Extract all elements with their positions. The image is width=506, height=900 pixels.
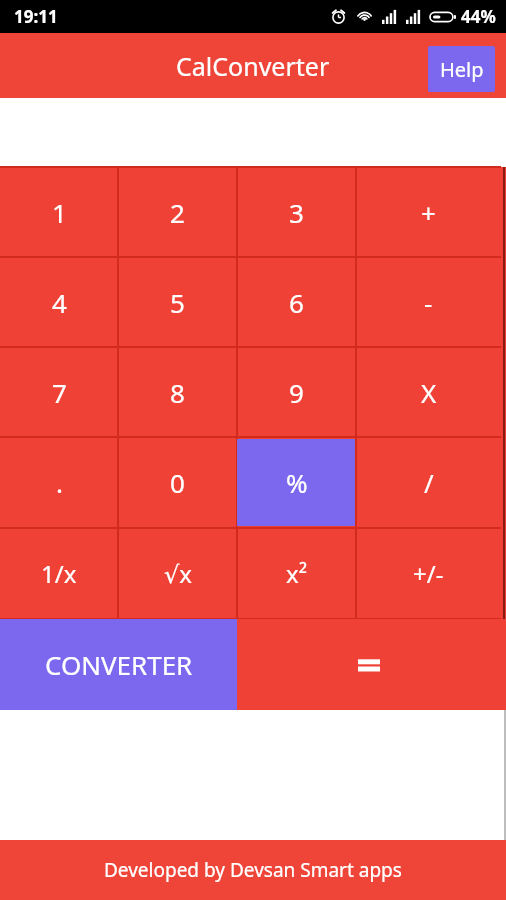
staticText: +/- bbox=[413, 557, 444, 590]
staticText: 5 bbox=[170, 285, 185, 320]
button[interactable]: + bbox=[356, 167, 501, 257]
other: Wifi bbox=[356, 8, 373, 25]
staticText: CONVERTER bbox=[45, 647, 193, 682]
button[interactable]: . bbox=[0, 437, 118, 528]
staticText: Help bbox=[440, 56, 484, 83]
staticText: 2 bbox=[170, 195, 185, 230]
button[interactable]: x² bbox=[237, 528, 356, 619]
staticText: √x bbox=[164, 557, 192, 590]
staticText: 7 bbox=[52, 375, 67, 410]
button[interactable]: 7 bbox=[0, 347, 118, 437]
staticText: 19:11 bbox=[14, 5, 58, 28]
button[interactable]: 6 bbox=[237, 257, 356, 347]
button[interactable]: +/- bbox=[356, 528, 501, 619]
other: Battery bbox=[430, 10, 456, 24]
staticText: Developed by Devsan Smart apps bbox=[104, 857, 402, 883]
button[interactable]: Developed by Devsan Smart apps bbox=[0, 840, 506, 900]
button[interactable]: √x bbox=[118, 528, 237, 619]
staticText: 44% bbox=[461, 5, 496, 28]
staticText: 1 bbox=[52, 195, 67, 230]
button[interactable]: 8 bbox=[118, 347, 237, 437]
button[interactable]: 5 bbox=[118, 257, 237, 347]
other: Signal bbox=[406, 9, 422, 24]
button[interactable]: 4 bbox=[0, 257, 118, 347]
staticText: 9 bbox=[289, 375, 304, 410]
staticText: CalConverter bbox=[176, 49, 330, 83]
button[interactable]: / bbox=[356, 437, 501, 528]
other: Equals bbox=[358, 657, 380, 673]
staticText: 1/x bbox=[41, 557, 77, 590]
staticText: / bbox=[424, 465, 434, 500]
staticText: X bbox=[421, 375, 437, 410]
staticText: 6 bbox=[289, 285, 304, 320]
button[interactable]: X bbox=[356, 347, 501, 437]
staticText: . bbox=[56, 465, 63, 500]
staticText: + bbox=[421, 195, 436, 230]
button[interactable]: 9 bbox=[237, 347, 356, 437]
other: Alarm bbox=[330, 8, 347, 25]
button[interactable]: Equals bbox=[237, 619, 501, 710]
button[interactable]: Help bbox=[428, 46, 495, 92]
button[interactable]: 1 bbox=[0, 167, 118, 257]
staticText: 8 bbox=[170, 375, 185, 410]
button[interactable]: CONVERTER bbox=[0, 619, 237, 710]
button[interactable]: 1/x bbox=[0, 528, 118, 619]
staticText: % bbox=[286, 465, 308, 500]
button[interactable]: 2 bbox=[118, 167, 237, 257]
staticText: - bbox=[424, 285, 433, 320]
button[interactable]: % bbox=[237, 437, 356, 528]
button[interactable]: - bbox=[356, 257, 501, 347]
staticText: 4 bbox=[52, 285, 67, 320]
other: Signal bbox=[382, 9, 398, 24]
staticText: 3 bbox=[289, 195, 304, 230]
button[interactable]: 3 bbox=[237, 167, 356, 257]
button[interactable]: 0 bbox=[118, 437, 237, 528]
staticText: 0 bbox=[170, 465, 185, 500]
staticText: x² bbox=[286, 557, 308, 590]
